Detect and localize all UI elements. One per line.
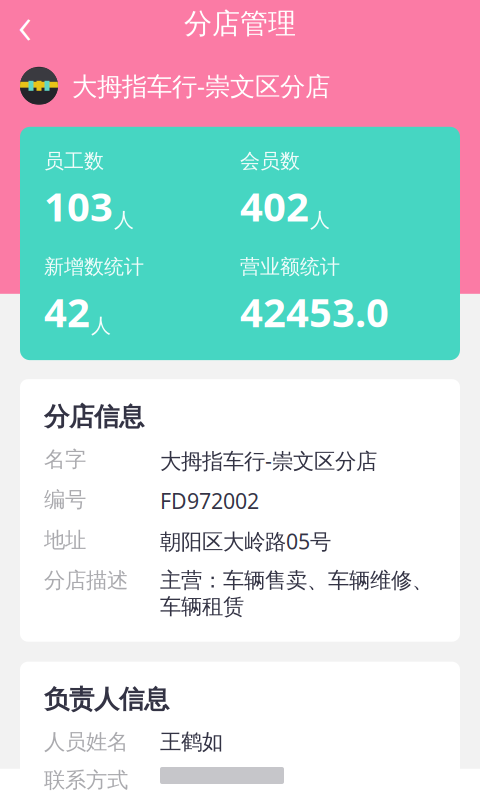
staticText: 42 xyxy=(44,285,90,338)
staticText: 人员姓名 xyxy=(44,729,128,755)
staticText: 营业额统计 xyxy=(240,254,340,279)
staticText: 103 xyxy=(44,179,113,232)
staticText: 朝阳区大岭路05号 xyxy=(160,527,331,555)
staticText: 分店信息 xyxy=(44,401,144,432)
staticText: 人 xyxy=(114,208,134,232)
staticText: 分店描述 xyxy=(44,567,128,593)
staticText: 名字 xyxy=(44,446,86,472)
staticText: 分店管理 xyxy=(184,7,296,41)
staticText: FD972002 xyxy=(160,487,259,515)
staticText: 编号 xyxy=(44,487,86,513)
staticText: 会员数 xyxy=(240,149,300,173)
staticText: 员工数 xyxy=(44,149,104,173)
staticText: 402 xyxy=(240,179,309,232)
staticText: 大拇指车行-崇文区分店 xyxy=(160,446,377,475)
staticText: 人 xyxy=(310,208,330,232)
staticText: 负责人信息 xyxy=(44,684,169,715)
staticText: 新增数统计 xyxy=(44,254,144,279)
staticText: 主营：车辆售卖、车辆维修、车辆租赁 xyxy=(160,567,433,620)
staticText: 地址 xyxy=(44,527,86,553)
staticText: 大拇指车行-崇文区分店 xyxy=(72,69,330,103)
staticText: 42453.0 xyxy=(240,285,389,338)
staticText: ‹ xyxy=(18,0,32,59)
staticText: 联系方式 xyxy=(44,767,128,793)
staticText: 王鹤如 xyxy=(160,729,223,755)
button[interactable]: 返回 xyxy=(0,0,50,48)
staticText: 人 xyxy=(91,314,111,338)
